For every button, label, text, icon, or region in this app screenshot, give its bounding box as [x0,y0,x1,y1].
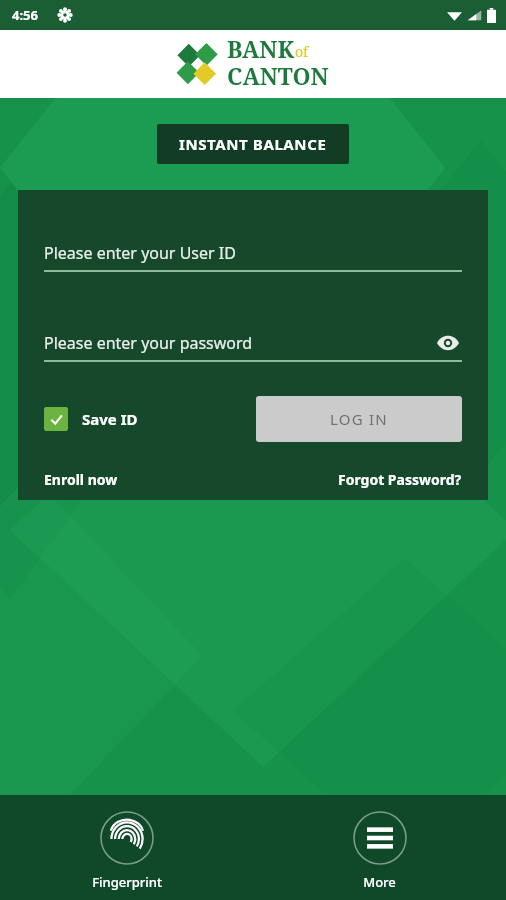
button[interactable]: INSTANT BALANCE [157,124,349,164]
button[interactable]: More options [253,805,506,891]
staticText: 4:56 [12,6,38,24]
staticText: INSTANT BALANCE [179,134,327,154]
staticText: Enroll now [44,470,118,489]
staticText: Please enter your password [44,332,253,354]
staticText: More [363,873,396,891]
button[interactable]: Fingerprint login [0,805,253,891]
button[interactable]: Enroll now [44,470,118,489]
button[interactable]: Forgot Password? [338,470,462,489]
staticText: Forgot Password? [338,470,462,489]
staticText: LOG IN [330,409,388,429]
button[interactable]: Save ID [44,407,138,431]
button[interactable]: Show password [434,329,462,357]
staticText: Save ID [82,409,138,429]
button[interactable]: LOG IN [256,396,462,442]
button[interactable]: Please enter your password [44,326,462,360]
staticText: Please enter your User ID [44,242,236,264]
button[interactable]: Please enter your User ID [44,236,462,270]
staticText: BANK [227,33,295,64]
staticText: CANTON [227,60,329,91]
staticText: of [295,42,309,61]
staticText: Fingerprint [92,873,162,891]
